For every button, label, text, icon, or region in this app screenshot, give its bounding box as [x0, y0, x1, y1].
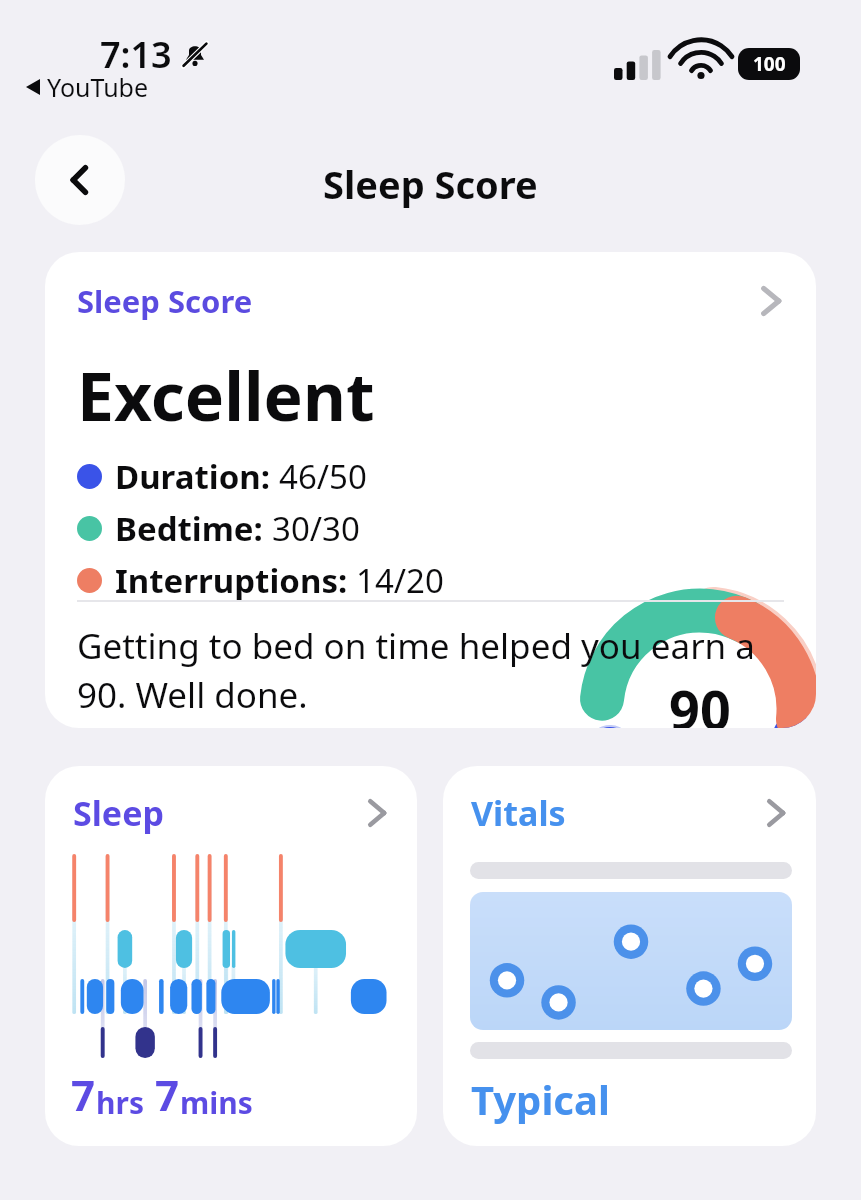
staticText: Sleep: [73, 790, 164, 836]
staticText: YouTube: [47, 70, 149, 104]
staticText: Getting to bed on time helped you earn a…: [77, 622, 777, 718]
staticText: Typical: [471, 1072, 610, 1126]
staticText: Sleep Score: [77, 280, 253, 322]
staticText: Sleep Score: [323, 158, 538, 210]
staticText: 14/20: [356, 558, 444, 603]
staticText: hrs: [96, 1082, 144, 1123]
staticText: 7:13: [100, 30, 172, 79]
staticText: Vitals: [471, 790, 566, 836]
staticText: Excellent: [77, 350, 375, 440]
staticText: 7: [71, 1066, 96, 1123]
button[interactable]: Back: [35, 135, 125, 225]
staticText: Bedtime:: [115, 506, 272, 551]
staticText: 7: [155, 1066, 180, 1123]
button[interactable]: Sleep Score: [45, 252, 816, 728]
staticText: 100: [753, 51, 786, 77]
staticText: 30/30: [272, 506, 360, 551]
staticText: Duration:: [115, 454, 279, 499]
staticText: 46/50: [279, 454, 367, 499]
button[interactable]: Sleep: [45, 766, 417, 1146]
staticText: mins: [180, 1082, 253, 1123]
button[interactable]: Vitals: [443, 766, 816, 1146]
staticText: 90: [669, 672, 731, 728]
staticText: Interruptions:: [115, 558, 356, 603]
